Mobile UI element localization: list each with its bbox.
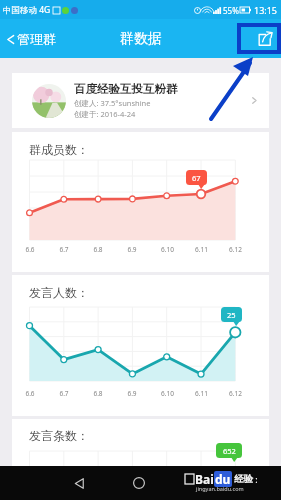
- staticText: 6.10: [161, 245, 174, 254]
- button[interactable]: 管理群: [0, 24, 64, 54]
- staticText: jingyan.baidu.com: [196, 485, 244, 492]
- staticText: 25: [227, 310, 236, 320]
- staticText: 6.7: [59, 389, 69, 398]
- button[interactable]: Share: [252, 27, 276, 51]
- staticText: 6.11: [195, 389, 208, 398]
- staticText: 创建人: 37.5°sunshine: [74, 98, 151, 108]
- staticText: 6.8: [93, 245, 103, 254]
- staticText: 6.9: [127, 389, 137, 398]
- staticText: 百度经验互投互粉群: [74, 82, 178, 96]
- staticText: 发言人数：: [29, 285, 89, 300]
- staticText: 中国移动 4G: [3, 4, 51, 16]
- staticText: 13:15: [254, 4, 278, 16]
- button[interactable]: Back: [68, 472, 90, 494]
- button[interactable]: Home: [128, 472, 150, 494]
- staticText: 发言条数：: [29, 428, 89, 443]
- staticText: 67: [192, 173, 201, 183]
- staticText: 6.6: [25, 389, 35, 398]
- staticText: 管理群: [17, 31, 56, 47]
- staticText: 652: [223, 446, 236, 456]
- button[interactable]: 百度经验互投互粉群: [12, 73, 269, 128]
- staticText: 6.7: [59, 245, 69, 254]
- staticText: 经验: [234, 473, 253, 485]
- staticText: 群数据: [120, 30, 162, 48]
- staticText: 6.10: [161, 389, 174, 398]
- staticText: 6.9: [127, 245, 137, 254]
- staticText: 55%: [223, 5, 239, 16]
- staticText: du: [215, 471, 231, 487]
- staticText: 6.6: [25, 245, 35, 254]
- staticText: Bai: [195, 471, 214, 487]
- staticText: 6.11: [195, 245, 208, 254]
- staticText: 群成员数：: [29, 142, 89, 157]
- staticText: 创建于: 2016-4-24: [74, 109, 136, 119]
- staticText: 6.12: [229, 389, 242, 398]
- staticText: 6.12: [229, 245, 242, 254]
- staticText: :: [253, 473, 258, 485]
- staticText: 6.8: [93, 389, 103, 398]
